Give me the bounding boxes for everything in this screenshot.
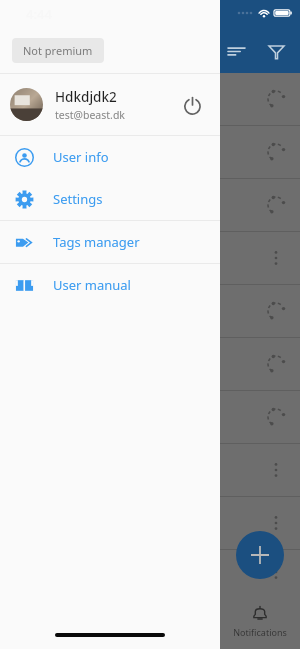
button[interactable]: User info bbox=[0, 136, 220, 178]
button[interactable]: Log out bbox=[170, 83, 214, 127]
button[interactable] bbox=[0, 338, 300, 390]
button[interactable] bbox=[0, 179, 300, 231]
button[interactable] bbox=[0, 232, 300, 284]
button[interactable]: User manual bbox=[0, 264, 220, 306]
staticText: Not premium bbox=[23, 43, 93, 58]
staticText: Hdkdjdk2 bbox=[55, 88, 117, 106]
button[interactable] bbox=[0, 497, 300, 549]
staticText: User info bbox=[53, 148, 109, 166]
staticText: Notifications bbox=[233, 626, 287, 638]
button[interactable]: Notifications bbox=[220, 593, 300, 649]
button[interactable] bbox=[0, 126, 300, 178]
staticText: User manual bbox=[53, 276, 131, 294]
button[interactable]: Add bbox=[236, 531, 284, 579]
button[interactable] bbox=[0, 391, 300, 443]
button[interactable]: Not premium bbox=[12, 38, 104, 63]
button[interactable]: Filter bbox=[256, 31, 296, 71]
staticText: Tags manager bbox=[53, 233, 140, 251]
button[interactable] bbox=[0, 550, 300, 593]
button[interactable] bbox=[0, 444, 300, 496]
button[interactable] bbox=[0, 285, 300, 337]
button[interactable]: Settings bbox=[0, 178, 220, 220]
button[interactable]: Sort bbox=[216, 31, 256, 71]
button[interactable]: Tags manager bbox=[0, 221, 220, 263]
button[interactable] bbox=[0, 73, 300, 125]
staticText: test@beast.dk bbox=[55, 108, 125, 122]
staticText: Settings bbox=[53, 190, 103, 208]
button[interactable]: Hdkdjdk2 bbox=[0, 74, 220, 135]
